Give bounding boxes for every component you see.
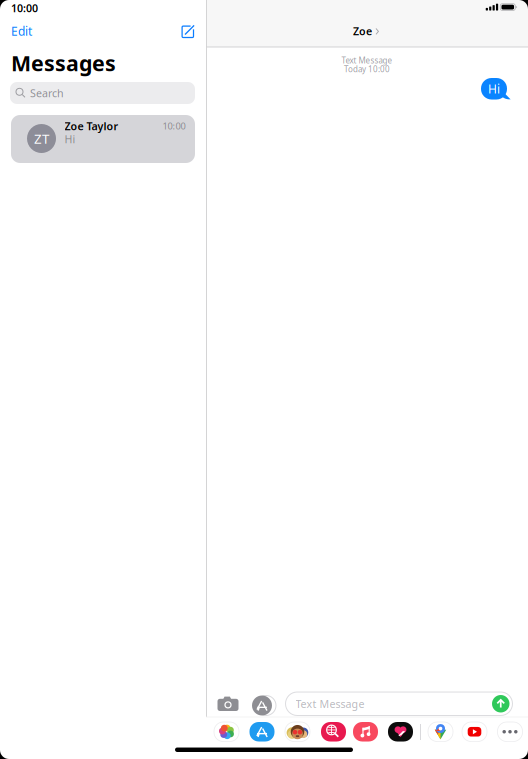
button[interactable]: App Store — [249, 722, 274, 741]
button[interactable]: Camera — [217, 695, 239, 712]
staticText: Hi — [64, 132, 75, 146]
staticText: Text Message — [295, 697, 364, 711]
staticText: Text Message — [341, 55, 392, 66]
staticText: Today 10:00 — [344, 64, 390, 74]
button[interactable]: Send — [492, 695, 509, 712]
button[interactable]: Zoe — [330, 23, 402, 39]
staticText: Messages — [11, 49, 116, 77]
staticText: 10:00 — [11, 1, 38, 15]
button[interactable]: Search — [10, 82, 195, 104]
button[interactable]: Music — [353, 722, 378, 741]
button[interactable]: More — [497, 722, 522, 741]
staticText: Search — [30, 86, 64, 100]
button[interactable]: Apps — [251, 695, 276, 716]
staticText: Hi — [488, 81, 500, 97]
button[interactable]: ZT — [11, 115, 195, 163]
button[interactable]: YouTube — [462, 722, 487, 741]
staticText: Edit — [11, 23, 32, 39]
button[interactable]: Edit — [6, 21, 46, 41]
button[interactable]: Digital Touch — [388, 722, 413, 741]
button[interactable]: Maps — [428, 722, 453, 741]
button[interactable]: Compose — [176, 21, 200, 41]
button[interactable]: Memoji — [285, 722, 310, 741]
button[interactable]: Image search — [321, 722, 346, 741]
staticText: 10:00 — [162, 120, 185, 132]
staticText: ZT — [34, 130, 49, 147]
button[interactable]: Photos — [214, 722, 239, 741]
staticText: Zoe — [353, 24, 372, 38]
staticText: Zoe Taylor — [64, 119, 118, 133]
